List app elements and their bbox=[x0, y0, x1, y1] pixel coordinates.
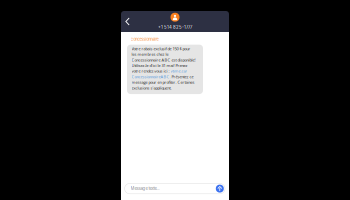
staticText: Concessionnaire bbox=[130, 37, 158, 42]
staticText: les membres chez le bbox=[131, 51, 168, 57]
staticText: Utilisez-le d'ici le 31 mai! Prenez bbox=[131, 63, 187, 68]
staticText: vtime.ca/ bbox=[170, 68, 186, 74]
staticText: message pour en profiter. Certaines bbox=[131, 79, 194, 85]
staticText: Présentez ce bbox=[170, 74, 193, 79]
staticText: Votre rabais exclusif de 150 $ pour bbox=[131, 46, 190, 51]
staticText: Message texte... bbox=[131, 186, 160, 191]
staticText: votre rendez-vous ici : bbox=[131, 68, 170, 74]
staticText: Concessionnaire ABC est disponible! bbox=[131, 57, 195, 62]
staticText: exclusions s'appliquent. bbox=[131, 85, 171, 90]
staticText: ConcessionnaireABC. bbox=[131, 74, 170, 79]
button[interactable]: Back bbox=[121, 11, 134, 32]
button[interactable]: Message texte... bbox=[125, 183, 225, 194]
staticText: +1 514 825-1777 bbox=[158, 25, 192, 30]
